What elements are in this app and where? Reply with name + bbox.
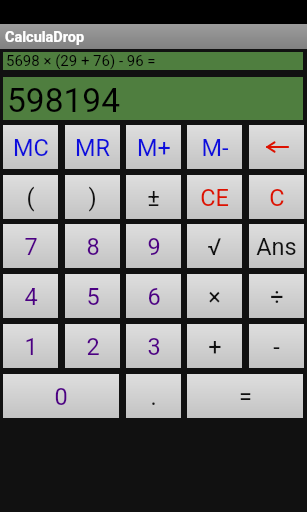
staticText: 3 bbox=[147, 333, 161, 361]
button[interactable]: ± bbox=[126, 175, 181, 219]
button[interactable]: × bbox=[187, 274, 242, 318]
button[interactable]: 6 bbox=[126, 274, 181, 318]
staticText: = bbox=[239, 383, 252, 411]
button[interactable]: M- bbox=[187, 125, 242, 169]
button[interactable]: 8 bbox=[65, 224, 120, 268]
staticText: 1 bbox=[24, 333, 38, 361]
staticText: ) bbox=[88, 184, 97, 212]
staticText: 9 bbox=[147, 233, 161, 261]
button[interactable]: ÷ bbox=[249, 274, 304, 318]
button[interactable]: MR bbox=[65, 125, 120, 169]
staticText: 2 bbox=[86, 333, 100, 361]
button[interactable]: + bbox=[187, 324, 242, 368]
button[interactable]: 2 bbox=[65, 324, 120, 368]
staticText: M+ bbox=[137, 134, 171, 162]
button[interactable]: CalculaDrop bbox=[0, 24, 307, 49]
staticText: . bbox=[150, 383, 157, 411]
button[interactable]: - bbox=[249, 324, 304, 368]
button[interactable]: 9 bbox=[126, 224, 181, 268]
button[interactable]: 0 bbox=[3, 374, 119, 418]
button[interactable]: M+ bbox=[126, 125, 181, 169]
staticText: M- bbox=[201, 134, 229, 162]
staticText: + bbox=[208, 333, 222, 361]
staticText: 6 bbox=[147, 283, 161, 311]
staticText: CE bbox=[200, 184, 229, 212]
button[interactable]: C bbox=[249, 175, 304, 219]
button[interactable]: 1 bbox=[3, 324, 58, 368]
staticText: 5 bbox=[86, 283, 100, 311]
staticText: MC bbox=[13, 134, 49, 162]
staticText: 5698 × (29 + 76) - 96 = bbox=[6, 52, 156, 70]
button[interactable]: . bbox=[126, 374, 181, 418]
button[interactable]: 5698 × (29 + 76) - 96 = bbox=[3, 52, 303, 70]
button[interactable]: ( bbox=[3, 175, 58, 219]
staticText: × bbox=[208, 283, 221, 311]
staticText: 8 bbox=[86, 233, 100, 261]
button[interactable]: 5 bbox=[65, 274, 120, 318]
button[interactable]: Backspace bbox=[249, 125, 304, 169]
button[interactable]: = bbox=[187, 374, 303, 418]
button[interactable]: ) bbox=[65, 175, 120, 219]
staticText: Ans bbox=[256, 233, 297, 261]
staticText: CalculaDrop bbox=[5, 29, 85, 46]
staticText: MR bbox=[75, 134, 110, 162]
staticText: ÷ bbox=[270, 283, 284, 311]
button[interactable]: 7 bbox=[3, 224, 58, 268]
staticText: 4 bbox=[24, 283, 38, 311]
staticText: 598194 bbox=[7, 81, 120, 120]
staticText: 0 bbox=[54, 383, 68, 411]
staticText: - bbox=[273, 333, 280, 361]
button[interactable]: 4 bbox=[3, 274, 58, 318]
staticText: √ bbox=[207, 233, 222, 261]
staticText: 7 bbox=[24, 233, 38, 261]
button[interactable]: √ bbox=[187, 224, 242, 268]
button[interactable]: CE bbox=[187, 175, 242, 219]
button[interactable]: Ans bbox=[249, 224, 304, 268]
staticText: ± bbox=[147, 184, 160, 212]
staticText: ( bbox=[26, 184, 35, 212]
button[interactable]: MC bbox=[3, 125, 58, 169]
button[interactable]: 598194 bbox=[3, 77, 303, 120]
button[interactable]: 3 bbox=[126, 324, 181, 368]
staticText: C bbox=[269, 184, 285, 212]
